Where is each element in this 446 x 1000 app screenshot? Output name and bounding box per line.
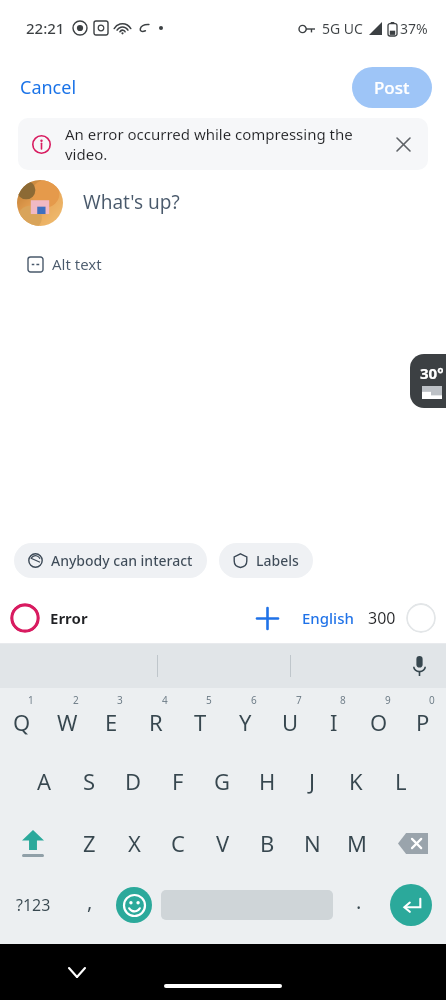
staticText: E [105, 707, 118, 737]
button[interactable]: N [290, 812, 334, 874]
button[interactable]: 1 [0, 688, 44, 750]
button[interactable]: C [156, 812, 200, 874]
staticText: T [194, 707, 207, 737]
staticText: V [216, 828, 230, 858]
staticText: 3 [117, 693, 123, 707]
button[interactable]: Enter [390, 884, 432, 926]
staticText: , [87, 888, 93, 915]
button[interactable]: X [112, 812, 156, 874]
button[interactable]: M [335, 812, 379, 874]
button[interactable]: 5 [178, 688, 222, 750]
staticText: 7 [296, 693, 302, 707]
button[interactable]: Add [248, 599, 286, 637]
staticText: F [172, 766, 184, 796]
staticText: K [349, 766, 363, 796]
staticText: A [37, 766, 52, 796]
staticText: 37% [400, 19, 428, 38]
staticText: Labels [256, 551, 299, 570]
staticText: Q [13, 707, 31, 737]
staticText: U [282, 707, 299, 737]
staticText: W [57, 707, 78, 737]
button[interactable]: , [70, 874, 110, 936]
button[interactable]: L [379, 750, 423, 812]
button[interactable]: 2 [45, 688, 89, 750]
button[interactable]: An error occurred while compressing the … [18, 118, 428, 170]
button[interactable]: Labels [219, 543, 313, 578]
button[interactable]: S [67, 750, 111, 812]
staticText: 4 [162, 693, 168, 707]
button[interactable]: Hide keyboard [60, 955, 94, 989]
staticText: D [125, 766, 142, 796]
button[interactable]: Character counter [406, 603, 436, 633]
staticText: ?123 [16, 894, 51, 916]
button[interactable]: . [341, 874, 377, 936]
staticText: 0 [429, 693, 435, 707]
staticText: 1 [28, 693, 34, 707]
button[interactable]: K [334, 750, 378, 812]
button[interactable]: Profile picture [17, 180, 63, 226]
staticText: English [302, 608, 354, 628]
staticText: 2 [73, 693, 79, 707]
staticText: I [330, 707, 338, 737]
staticText: 22:21 [26, 18, 65, 38]
staticText: Z [83, 828, 96, 858]
staticText: 300 [368, 607, 396, 629]
button[interactable]: V [201, 812, 245, 874]
button[interactable]: Anybody can interact [14, 543, 207, 578]
staticText: N [304, 828, 321, 858]
staticText: Alt text [52, 254, 102, 274]
staticText: 30° [420, 363, 444, 383]
staticText: Post [374, 76, 410, 99]
button[interactable]: 9 [357, 688, 401, 750]
staticText: Y [239, 707, 252, 737]
staticText: Cancel [20, 75, 77, 100]
staticText: S [83, 766, 96, 796]
button[interactable]: Voice input [402, 649, 436, 683]
staticText: H [259, 766, 276, 796]
staticText: 6 [251, 693, 257, 707]
button[interactable]: 6 [223, 688, 267, 750]
button[interactable]: B [245, 812, 289, 874]
staticText: 5 [206, 693, 212, 707]
staticText: 5G UC [322, 19, 363, 38]
staticText: O [370, 707, 388, 737]
button[interactable]: Cancel [10, 69, 87, 106]
staticText: 9 [385, 693, 391, 707]
button[interactable]: Weather 30 degrees [410, 354, 446, 408]
button[interactable]: Shift [10, 812, 56, 874]
button[interactable]: 3 [89, 688, 133, 750]
button[interactable]: Backspace [390, 821, 436, 865]
staticText: C [171, 828, 185, 858]
staticText: Anybody can interact [51, 551, 193, 570]
button[interactable]: Alt text [22, 250, 108, 278]
button[interactable]: ?123 [8, 874, 58, 936]
staticText: B [260, 828, 275, 858]
button[interactable]: 8 [312, 688, 356, 750]
button[interactable]: 7 [268, 688, 312, 750]
button[interactable]: F [156, 750, 200, 812]
button[interactable]: 4 [134, 688, 178, 750]
button[interactable]: H [245, 750, 289, 812]
staticText: L [395, 766, 407, 796]
staticText: Error [50, 608, 88, 628]
button[interactable]: G [200, 750, 244, 812]
staticText: G [214, 766, 231, 796]
button[interactable]: J [290, 750, 334, 812]
button[interactable]: D [111, 750, 155, 812]
staticText: . [356, 888, 362, 915]
staticText: J [309, 766, 316, 796]
staticText: P [416, 707, 430, 737]
staticText: X [128, 828, 141, 858]
staticText: 8 [340, 693, 346, 707]
button[interactable]: A [22, 750, 66, 812]
button[interactable]: English [300, 604, 356, 632]
button[interactable]: Dismiss error [386, 127, 420, 161]
button[interactable]: Emoji [116, 887, 152, 923]
staticText: An error occurred while compressing the … [65, 124, 386, 164]
button[interactable]: 0 [401, 688, 445, 750]
button[interactable]: Post [352, 67, 432, 108]
button[interactable]: Z [67, 812, 111, 874]
button[interactable]: Error indicator [10, 603, 40, 633]
staticText: R [149, 707, 163, 737]
